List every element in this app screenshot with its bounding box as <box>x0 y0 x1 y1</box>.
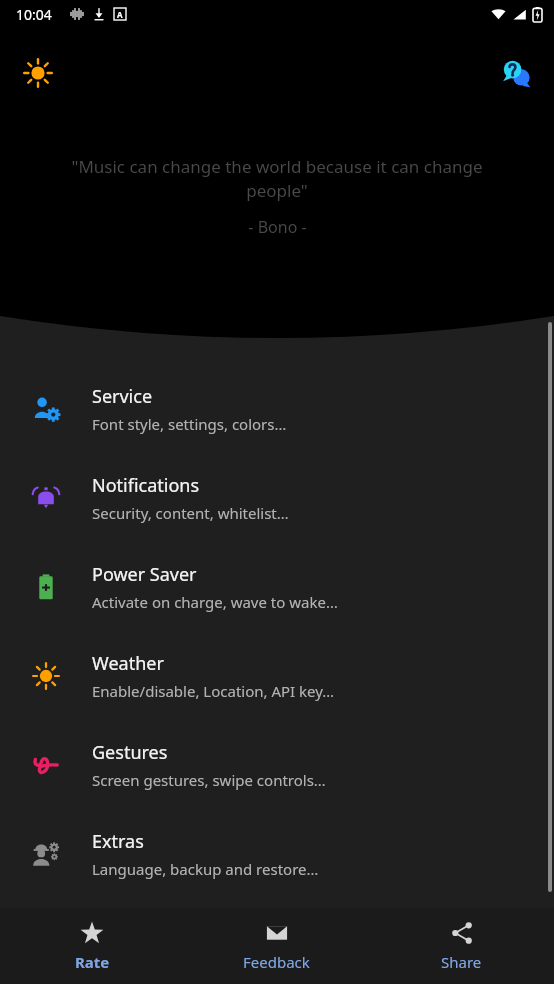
staticText: Extras <box>92 829 144 854</box>
staticText: Font style, settings, colors… <box>92 414 287 434</box>
staticText: Service <box>92 384 153 409</box>
button[interactable]: Extras <box>0 809 554 898</box>
button[interactable]: Notifications <box>0 453 554 542</box>
staticText: Share <box>441 952 482 972</box>
staticText: Language, backup and restore… <box>92 859 319 879</box>
staticText: Rate <box>75 952 110 972</box>
staticText: Gestures <box>92 740 168 765</box>
staticText: 10:04 <box>16 5 52 24</box>
staticText: - Bono - <box>248 216 307 238</box>
button[interactable]: Share <box>369 908 554 984</box>
staticText: Notifications <box>92 473 200 498</box>
button[interactable]: Gestures <box>0 720 554 809</box>
button[interactable]: Theme <box>14 49 62 97</box>
staticText: Weather <box>92 651 164 676</box>
button[interactable]: Service <box>0 364 554 453</box>
button[interactable]: Power Saver <box>0 542 554 631</box>
staticText: Screen gestures, swipe controls… <box>92 770 326 790</box>
button[interactable]: Feedback <box>184 908 369 984</box>
staticText: Enable/disable, Location, API key… <box>92 681 335 701</box>
button[interactable]: Weather <box>0 631 554 720</box>
staticText: A <box>117 9 123 20</box>
button[interactable]: FAQ <box>492 49 540 97</box>
staticText: Activate on charge, wave to wake… <box>92 592 338 612</box>
staticText: "Music can change the world because it c… <box>60 155 494 202</box>
staticText: Power Saver <box>92 562 197 587</box>
staticText: Feedback <box>243 952 310 972</box>
button[interactable]: Rate <box>0 908 184 984</box>
staticText: Security, content, whitelist… <box>92 503 289 523</box>
